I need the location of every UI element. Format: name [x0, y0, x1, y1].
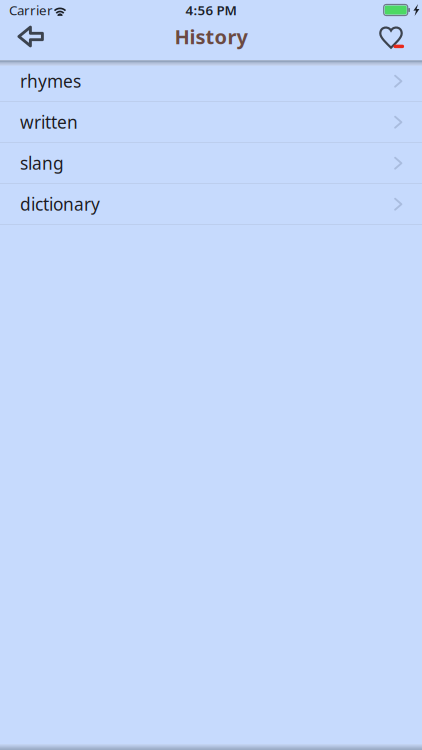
button[interactable]: Remove from favorites — [369, 19, 422, 60]
staticText: 4:56 PM — [185, 1, 236, 19]
button[interactable]: dictionary — [0, 184, 422, 225]
button[interactable]: rhymes — [0, 61, 422, 102]
staticText: rhymes — [20, 69, 81, 92]
staticText: dictionary — [20, 192, 100, 215]
button[interactable]: Back — [0, 19, 54, 60]
button[interactable]: written — [0, 102, 422, 143]
button[interactable]: slang — [0, 143, 422, 184]
staticText: slang — [20, 151, 64, 174]
staticText: Carrier — [9, 1, 53, 19]
staticText: written — [20, 110, 78, 133]
staticText: History — [174, 23, 247, 50]
